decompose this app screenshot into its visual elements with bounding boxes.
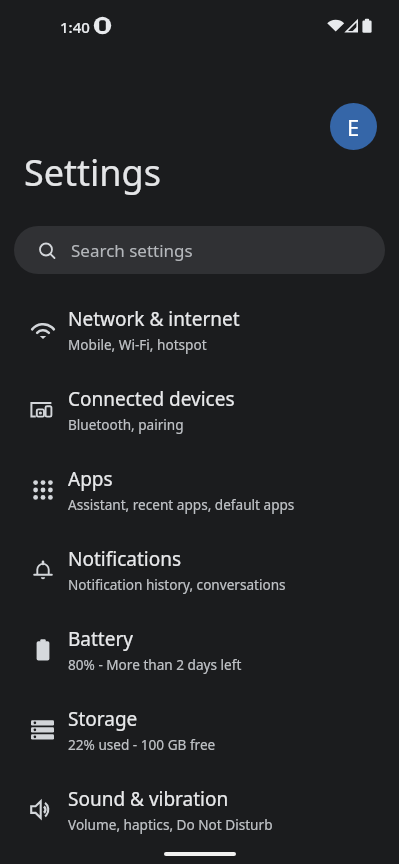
staticText: Bluetooth, pairing <box>68 415 184 434</box>
button[interactable]: Battery <box>0 610 399 690</box>
staticText: Notification history, conversations <box>68 575 286 594</box>
staticText: 80% - More than 2 days left <box>68 655 242 674</box>
button[interactable]: Apps <box>0 450 399 530</box>
button[interactable]: Storage <box>0 690 399 770</box>
button[interactable]: Sound & vibration <box>0 770 399 850</box>
staticText: Notifications <box>68 546 182 572</box>
button[interactable]: Search settings <box>14 226 385 274</box>
staticText: 22% used - 100 GB free <box>68 735 216 754</box>
staticText: Sound & vibration <box>68 786 229 812</box>
button[interactable]: Connected devices <box>0 370 399 450</box>
staticText: Mobile, Wi-Fi, hotspot <box>68 335 207 354</box>
button[interactable]: Notifications <box>0 530 399 610</box>
staticText: 1:40 <box>60 17 90 37</box>
staticText: Volume, haptics, Do Not Disturb <box>68 815 273 834</box>
button[interactable]: Network & internet <box>0 290 399 370</box>
staticText: Connected devices <box>68 386 235 412</box>
staticText: Network & internet <box>68 306 240 332</box>
staticText: E <box>347 112 360 142</box>
staticText: Apps <box>68 466 113 492</box>
staticText: Search settings <box>71 239 193 262</box>
staticText: Storage <box>68 706 138 732</box>
staticText: Battery <box>68 626 133 652</box>
button[interactable]: E <box>330 103 377 150</box>
staticText: Settings <box>24 148 161 197</box>
staticText: Assistant, recent apps, default apps <box>68 495 295 514</box>
